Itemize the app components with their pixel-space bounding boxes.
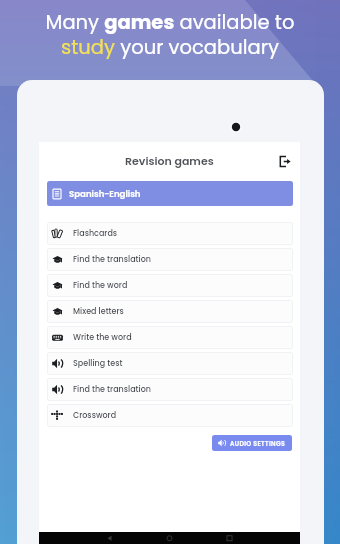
staticText: Spanish-English xyxy=(69,188,141,200)
staticText: AUDIO SETTINGS xyxy=(230,439,286,448)
staticText: Write the word xyxy=(73,332,132,343)
button[interactable]: Log out xyxy=(278,155,291,168)
staticText: Find the translation xyxy=(73,384,151,395)
staticText: Flashcards xyxy=(73,228,118,239)
staticText: Revision games xyxy=(125,153,214,168)
button[interactable]: Mixed letters xyxy=(47,300,293,323)
button[interactable]: Crossword xyxy=(47,404,293,427)
staticText: Crossword xyxy=(73,410,117,421)
button[interactable]: Find the translation xyxy=(47,378,293,401)
button[interactable]: Spelling test xyxy=(47,352,293,375)
staticText: Many games available to study your vocab… xyxy=(0,9,340,61)
staticText: Find the word xyxy=(73,280,128,291)
staticText: Mixed letters xyxy=(73,306,124,317)
button[interactable]: Flashcards xyxy=(47,222,293,245)
staticText: Spelling test xyxy=(73,358,123,369)
button[interactable]: Write the word xyxy=(47,326,293,349)
button[interactable]: Spanish-English xyxy=(47,181,293,206)
button[interactable]: Find the translation xyxy=(47,248,293,271)
button[interactable]: AUDIO SETTINGS xyxy=(212,435,292,451)
staticText: Find the translation xyxy=(73,254,151,265)
button[interactable]: Find the word xyxy=(47,274,293,297)
